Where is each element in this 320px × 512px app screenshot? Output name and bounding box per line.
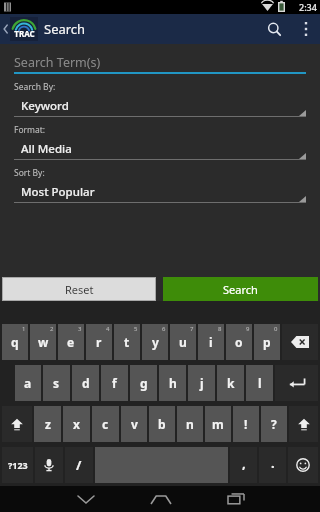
staticText: s	[53, 375, 60, 391]
button[interactable]: p	[254, 324, 280, 360]
staticText: All Media	[21, 141, 72, 157]
staticText: p	[263, 334, 271, 350]
staticText: ?	[271, 416, 277, 432]
staticText: 8	[218, 325, 222, 333]
staticText: f	[112, 375, 117, 391]
button[interactable]: k	[217, 365, 244, 401]
staticText: Search	[44, 20, 86, 38]
button[interactable]: t	[114, 324, 140, 360]
button[interactable]: u	[170, 324, 196, 360]
staticText: Format:	[14, 124, 46, 136]
button[interactable]: !	[233, 406, 259, 442]
button[interactable]: Home	[123, 486, 198, 512]
staticText: /	[76, 456, 82, 474]
button[interactable]: Hide keyboard	[48, 486, 123, 512]
staticText: b	[158, 416, 166, 432]
button[interactable]: ?	[261, 406, 287, 442]
staticText: z	[45, 416, 51, 432]
button[interactable]: o	[226, 324, 252, 360]
button[interactable]: l	[246, 365, 273, 401]
button[interactable]: Emoji	[288, 447, 318, 483]
button[interactable]: m	[205, 406, 231, 442]
staticText: u	[179, 334, 187, 350]
staticText: 2	[50, 325, 54, 333]
other: Back	[2, 23, 9, 35]
button[interactable]: c	[92, 406, 119, 442]
button[interactable]: j	[188, 365, 215, 401]
button[interactable]: e	[58, 324, 84, 360]
staticText: Search	[223, 282, 258, 297]
button[interactable]: b	[149, 406, 175, 442]
staticText: n	[186, 416, 194, 432]
button[interactable]: Reset	[3, 278, 155, 300]
staticText: y	[152, 334, 159, 350]
staticText: k	[227, 375, 235, 391]
button[interactable]: /	[65, 447, 93, 483]
staticText: q	[11, 334, 19, 350]
staticText: 1	[22, 325, 26, 333]
staticText: Search By:	[14, 81, 56, 93]
staticText: c	[102, 416, 109, 432]
button[interactable]: f	[101, 365, 128, 401]
staticText: e	[67, 334, 75, 350]
button[interactable]: Keyword	[14, 96, 306, 116]
button[interactable]: w	[30, 324, 56, 360]
staticText: ?123	[8, 459, 28, 471]
staticText: m	[212, 416, 224, 432]
staticText: 2:34	[299, 1, 317, 13]
staticText: Keyword	[21, 98, 69, 114]
staticText: ,	[242, 454, 246, 472]
button[interactable]: y	[142, 324, 168, 360]
button[interactable]: h	[159, 365, 186, 401]
button[interactable]: Search	[163, 277, 318, 301]
staticText: g	[140, 375, 148, 391]
button[interactable]: Back	[0, 14, 90, 44]
button[interactable]: r	[86, 324, 112, 360]
staticText: Search Term(s)	[14, 54, 101, 71]
staticText: !	[244, 416, 248, 432]
button[interactable]: Voice input	[35, 447, 63, 483]
staticText: Most Popular	[21, 184, 95, 200]
button[interactable]: s	[43, 365, 70, 401]
button[interactable]: g	[130, 365, 157, 401]
staticText: .	[271, 454, 275, 472]
staticText: 7	[190, 325, 194, 333]
button[interactable]: i	[198, 324, 224, 360]
staticText: Reset	[65, 282, 94, 297]
button[interactable]: ,	[230, 447, 257, 483]
staticText: r	[96, 334, 102, 350]
button[interactable]: v	[121, 406, 147, 442]
button[interactable]: x	[63, 406, 90, 442]
button[interactable]: Search	[256, 14, 292, 44]
staticText: d	[82, 375, 90, 391]
button[interactable]: ?123	[2, 447, 33, 483]
button[interactable]: q	[2, 324, 28, 360]
button[interactable]: All Media	[14, 139, 306, 159]
staticText: 3	[78, 325, 82, 333]
button[interactable]: d	[72, 365, 99, 401]
button[interactable]: a	[15, 365, 41, 401]
button[interactable]: n	[177, 406, 203, 442]
staticText: Sort By:	[14, 167, 45, 179]
staticText: o	[235, 334, 243, 350]
staticText: 5	[134, 325, 138, 333]
button[interactable]: .	[259, 447, 286, 483]
button[interactable]: z	[34, 406, 61, 442]
button[interactable]: Shift	[2, 406, 32, 442]
button[interactable]: Search Term(s)	[14, 52, 306, 72]
staticText: w	[38, 334, 49, 350]
button[interactable]: Most Popular	[14, 182, 306, 202]
staticText: v	[131, 416, 138, 432]
staticText: 6	[162, 325, 166, 333]
staticText: 4	[106, 325, 110, 333]
button[interactable]: Recent apps	[198, 486, 273, 512]
staticText: t	[124, 334, 130, 350]
staticText: l	[258, 375, 262, 391]
button[interactable]: Delete	[282, 324, 318, 360]
button[interactable]: More options	[292, 14, 320, 44]
button[interactable]: Shift	[289, 406, 318, 442]
button[interactable]: Enter	[275, 365, 318, 401]
staticText: a	[24, 375, 32, 391]
staticText: 9	[246, 325, 250, 333]
